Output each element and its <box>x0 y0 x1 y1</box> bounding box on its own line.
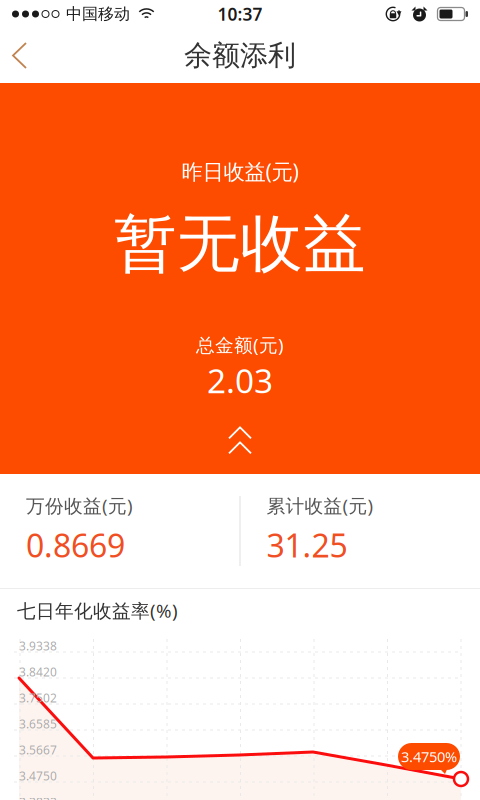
staticText: 总金额(元) <box>196 332 284 357</box>
staticText: 3.9338 <box>19 638 57 654</box>
staticText: 3.6585 <box>19 716 57 732</box>
staticText: 3.3832 <box>19 794 57 800</box>
staticText: 余额添利 <box>184 38 296 73</box>
staticText: 累计收益(元) <box>266 493 373 518</box>
staticText: 2.03 <box>207 358 273 402</box>
staticText: 10:37 <box>217 2 262 25</box>
staticText: 0.8669 <box>26 524 125 566</box>
staticText: 3.4750% <box>401 747 457 766</box>
staticText: 3.5667 <box>19 742 57 758</box>
staticText: 昨日收益(元) <box>181 157 298 185</box>
staticText: 暂无收益 <box>114 205 366 282</box>
staticText: 3.4750 <box>19 768 57 784</box>
staticText: 3.7502 <box>19 690 57 706</box>
button[interactable]: Collapse <box>201 417 279 463</box>
staticText: 七日年化收益率(%) <box>17 598 178 623</box>
staticText: 3.8420 <box>19 664 57 680</box>
staticText: 31.25 <box>266 524 347 566</box>
button[interactable]: Back <box>0 28 44 83</box>
staticText: 万份收益(元) <box>26 493 133 518</box>
staticText: 中国移动 <box>66 4 130 24</box>
